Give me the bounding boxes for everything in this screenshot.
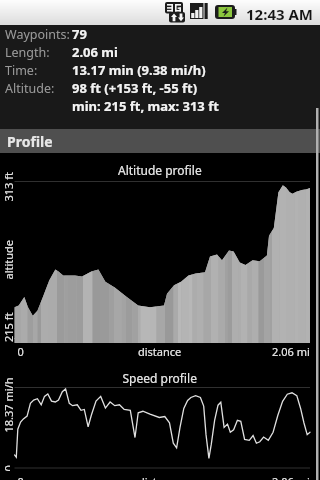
other: Status bar (0, 0, 320, 25)
staticText: Length: (5, 44, 50, 61)
staticText: min: 215 ft, max: 313 ft (72, 97, 219, 115)
staticText: 13.17 min (9.38 mi/h) (72, 61, 206, 79)
staticText: Time: (5, 62, 38, 79)
staticText: 2.06 mi (72, 43, 118, 61)
staticText: 79 (72, 25, 87, 43)
staticText: Waypoints: (5, 26, 70, 43)
button[interactable]: Profile (0, 129, 320, 153)
staticText: Profile (7, 132, 53, 151)
staticText: Altitude: (5, 80, 55, 97)
staticText: 98 ft (+153 ft, -55 ft) (72, 79, 198, 97)
button[interactable] (0, 361, 320, 480)
button[interactable] (0, 153, 320, 361)
